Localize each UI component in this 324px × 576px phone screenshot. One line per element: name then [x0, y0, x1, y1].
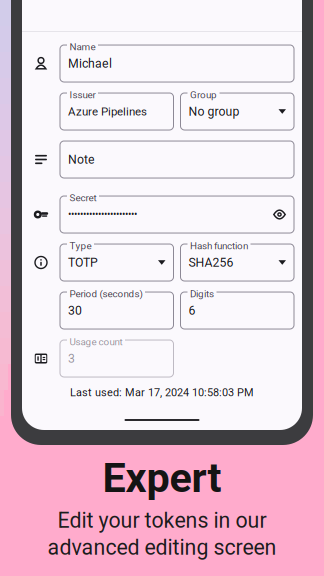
staticText: Group [190, 89, 217, 101]
staticText: Hash function [190, 240, 248, 252]
staticText: Type [69, 240, 91, 252]
staticText: Secret [69, 192, 96, 204]
staticText: Period (seconds) [69, 288, 142, 300]
staticText: 30 [68, 303, 82, 318]
staticText: Last used: Mar 17, 2024 10:58:03 PM [70, 386, 254, 399]
staticText: SHA256 [188, 255, 233, 270]
staticText: TOTP [68, 255, 98, 270]
staticText: ••••••••••••••••••••••• [68, 209, 137, 220]
staticText: Michael [68, 56, 112, 71]
staticText: Azure Pipelines [68, 105, 147, 118]
staticText: 3 [68, 351, 75, 366]
staticText: Usage count [69, 336, 122, 348]
staticText: advanced editing screen [47, 535, 276, 560]
staticText: Issuer [69, 89, 95, 101]
staticText: No group [188, 104, 239, 119]
staticText: Note [68, 152, 95, 167]
staticText: Name [69, 41, 95, 53]
staticText: 6 [188, 303, 195, 318]
staticText: Digits [190, 288, 214, 300]
staticText: Edit your tokens in our [57, 508, 266, 533]
staticText: Expert [102, 454, 221, 502]
